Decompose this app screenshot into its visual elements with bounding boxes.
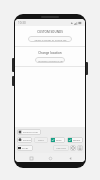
- button[interactable]: Refresh: [70, 145, 76, 151]
- button[interactable]: Select a folder or sound file: [28, 36, 72, 42]
- button[interactable]: Drive: [50, 137, 65, 143]
- staticText: SOUND NAME: [23, 131, 38, 134]
- button[interactable]: Silent: [34, 137, 48, 143]
- button[interactable]: START: [17, 145, 33, 151]
- staticText: START: [22, 147, 29, 150]
- button[interactable]: SOUND NAME: [17, 129, 41, 135]
- staticText: CUSTOM SOUNDS: [37, 30, 63, 34]
- button[interactable]: Home: [46, 154, 54, 162]
- button[interactable]: Recents: [27, 154, 35, 162]
- staticText: Drive: [56, 139, 62, 142]
- staticText: Select a folder or sound file: [34, 38, 67, 41]
- staticText: SOUND: [23, 139, 31, 142]
- button[interactable]: Multiple locations set: [35, 57, 65, 63]
- staticText: Multiple locations set: [38, 59, 63, 62]
- button[interactable]: Back: [66, 154, 74, 162]
- staticText: 10:30: [18, 21, 26, 25]
- staticText: Silent: [38, 139, 44, 142]
- button[interactable]: New Pack: [53, 145, 69, 151]
- staticText: Change location: [38, 51, 62, 55]
- button[interactable]: SOUND: [17, 137, 32, 143]
- staticText: New Pack: [56, 147, 66, 150]
- button[interactable]: List: [77, 145, 83, 151]
- button[interactable]: Repeat: [67, 137, 83, 143]
- staticText: Repeat: [73, 139, 81, 142]
